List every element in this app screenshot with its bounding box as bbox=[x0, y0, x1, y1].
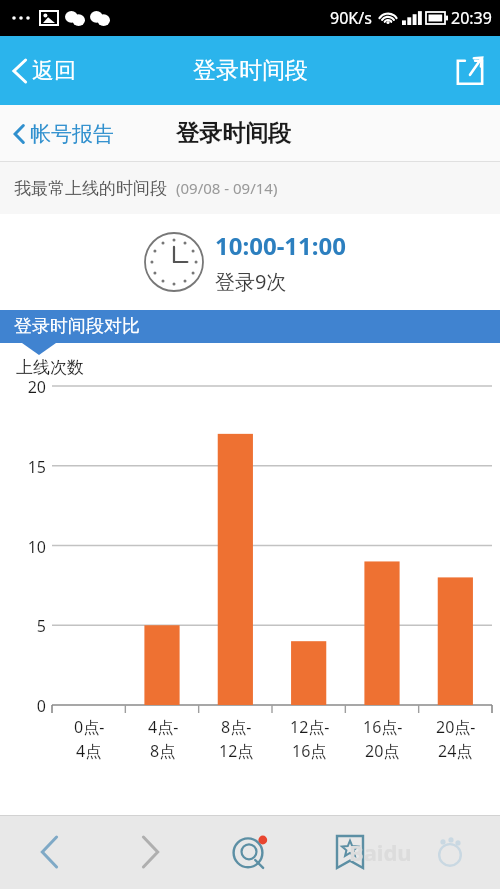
staticText: 12点- bbox=[290, 716, 330, 738]
staticText: 20 bbox=[0, 376, 46, 398]
staticText: 帐号报告 bbox=[30, 121, 114, 147]
staticText: 0 bbox=[0, 695, 46, 717]
staticText: 10:00-11:00 bbox=[215, 229, 346, 262]
staticText: 20:39 bbox=[451, 7, 492, 29]
staticText: 登录时间段 bbox=[193, 56, 308, 85]
staticText: 0点- bbox=[74, 716, 105, 738]
staticText: 16点 bbox=[292, 740, 327, 762]
staticText: 上线次数 bbox=[16, 357, 84, 378]
staticText: 10 bbox=[0, 536, 46, 558]
button[interactable]: 帐号报告 bbox=[0, 115, 124, 153]
staticText: 20点- bbox=[436, 716, 476, 738]
button[interactable]: Forward bbox=[100, 815, 200, 889]
button[interactable]: 返回 bbox=[0, 49, 92, 93]
staticText: 登录时间段 bbox=[176, 119, 291, 148]
staticText: 20点 bbox=[365, 740, 400, 762]
staticText: 15 bbox=[0, 456, 46, 478]
staticText: 90K/s bbox=[330, 7, 372, 29]
staticText: Baidu bbox=[349, 837, 412, 867]
staticText: 4点 bbox=[76, 740, 102, 762]
staticText: 16点- bbox=[363, 716, 403, 738]
staticText: 24点 bbox=[438, 740, 473, 762]
button[interactable]: Search bbox=[200, 815, 300, 889]
staticText: 5 bbox=[0, 615, 46, 637]
button[interactable]: Bookmark bbox=[300, 815, 400, 889]
button[interactable]: Back bbox=[0, 815, 100, 889]
staticText: 我最常上线的时间段 bbox=[14, 178, 167, 199]
staticText: 8点- bbox=[221, 716, 252, 738]
staticText: 12点 bbox=[219, 740, 254, 762]
button[interactable]: Menu bbox=[400, 815, 500, 889]
staticText: 登录9次 bbox=[215, 268, 287, 295]
staticText: 登录时间段对比 bbox=[14, 315, 140, 338]
staticText: 返回 bbox=[32, 57, 76, 85]
button[interactable]: Share bbox=[440, 45, 500, 97]
staticText: 8点 bbox=[150, 740, 176, 762]
staticText: 4点- bbox=[148, 716, 179, 738]
staticText: (09/08 - 09/14) bbox=[176, 178, 278, 198]
